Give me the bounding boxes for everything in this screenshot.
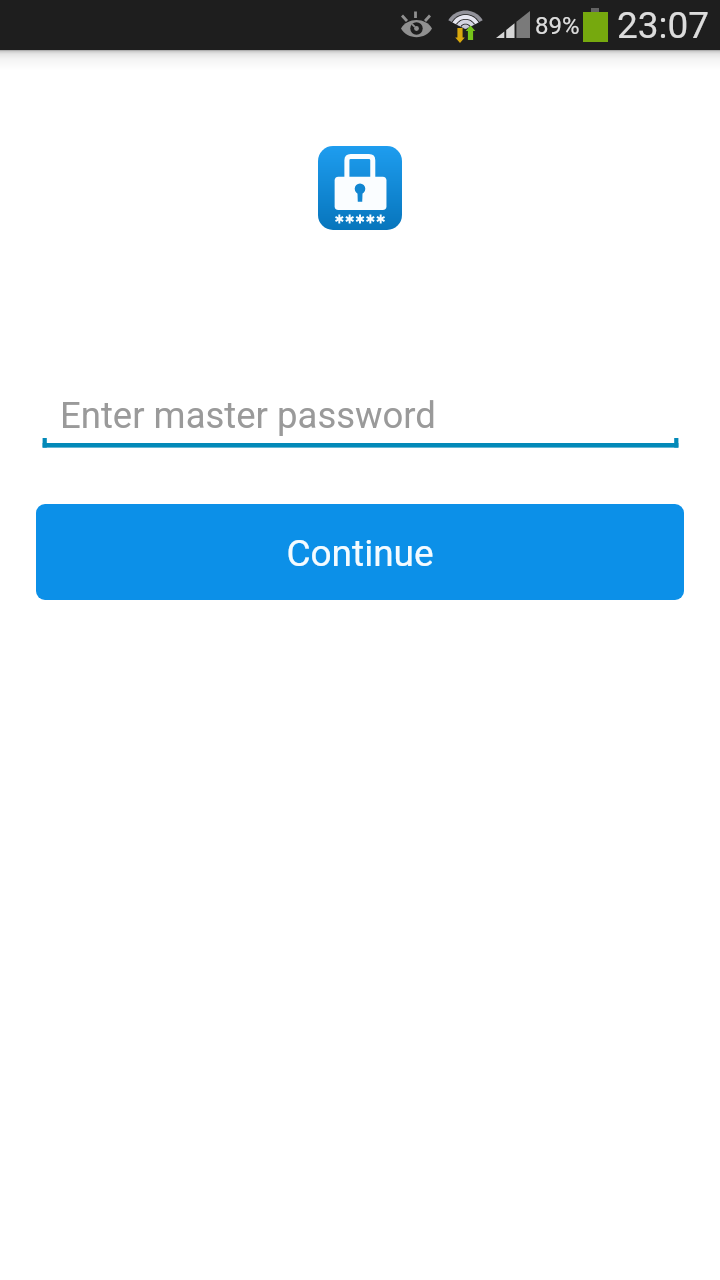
button[interactable]: Enter master password [36,378,685,454]
other: Password manager icon [318,146,402,230]
staticText: 23:07 [617,4,710,47]
staticText: Continue [286,532,434,575]
staticText: Enter master password [60,394,436,437]
button[interactable]: Continue [36,504,684,600]
staticText: 89% [535,12,580,40]
